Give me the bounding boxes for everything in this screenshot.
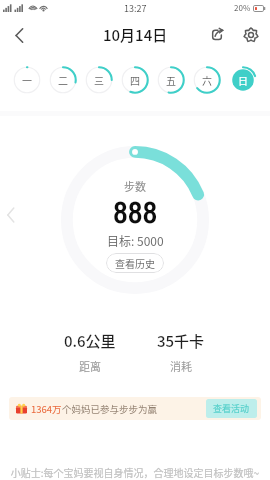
staticText: 四 [130,73,140,87]
button[interactable]: 一 [13,66,41,94]
staticText: 距离 [79,358,101,374]
staticText: 一 [22,73,32,87]
button[interactable]: 查看活动 [206,399,257,418]
staticText: 三 [94,73,104,87]
staticText: 1364万 [31,402,62,416]
button[interactable]: 四 [121,66,149,94]
staticText: 查看活动 [213,402,250,415]
button[interactable]: 五 [157,66,185,94]
button[interactable]: Settings [234,18,268,52]
staticText: 消耗 [170,358,192,374]
button[interactable]: 查看历史 [106,253,164,273]
button[interactable]: Share [200,18,234,52]
staticText: 888 [113,195,158,230]
staticText: 日 [238,73,248,87]
button[interactable]: 日 [229,66,257,94]
staticText: 二 [58,73,68,87]
button[interactable]: 1364万 [9,397,261,420]
button[interactable]: 二 [49,66,77,94]
staticText: 个妈妈已参与步步为赢 [62,402,158,416]
staticText: 查看历史 [115,256,155,270]
button[interactable]: 三 [85,66,113,94]
staticText: 五 [166,73,176,87]
staticText: 六 [202,73,212,87]
staticText: 13:27 [124,2,147,15]
staticText: 步数 [124,178,146,194]
staticText: 0.6公里 [64,330,116,352]
other: Previous day [7,208,15,222]
button[interactable]: Back [0,16,38,54]
staticText: 小贴士:每个宝妈要视自身情况，合理地设定目标步数哦~ [0,465,270,479]
staticText: 35千卡 [157,330,205,352]
button[interactable]: 六 [193,66,221,94]
staticText: 目标: 5000 [107,232,164,249]
staticText: 20% [234,2,251,14]
staticText: 10月14日 [103,24,168,46]
